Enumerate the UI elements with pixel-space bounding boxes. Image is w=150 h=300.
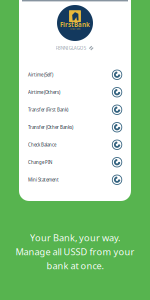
button[interactable]: Airtime (Self) xyxy=(19,66,131,83)
staticText: Airtime (Others) xyxy=(28,89,60,95)
staticText: Airtime (Self) xyxy=(28,72,53,78)
staticText: bank at once. xyxy=(46,259,103,272)
button[interactable]: Transfer (First Bank) xyxy=(19,101,131,118)
staticText: Check Balance xyxy=(28,142,56,148)
staticText: since 1894 xyxy=(70,27,80,30)
staticText: Change PIN xyxy=(28,159,52,165)
staticText: FBNNIGLAGOS xyxy=(56,45,86,51)
button[interactable]: Check Balance xyxy=(19,136,131,153)
staticText: FirstBank xyxy=(60,20,90,29)
button[interactable]: Transfer (Other Banks) xyxy=(19,118,131,136)
staticText: Mini Statement xyxy=(28,177,59,183)
button[interactable]: Mini Statement xyxy=(19,171,131,188)
staticText: Transfer (First Bank) xyxy=(28,107,68,113)
button[interactable]: Change PIN xyxy=(19,153,131,171)
button[interactable]: Airtime (Others) xyxy=(19,83,131,101)
staticText: Transfer (Other Banks) xyxy=(28,124,73,130)
staticText: Manage all USSD from your xyxy=(15,245,134,258)
staticText: Your Bank, your way. xyxy=(30,231,120,244)
